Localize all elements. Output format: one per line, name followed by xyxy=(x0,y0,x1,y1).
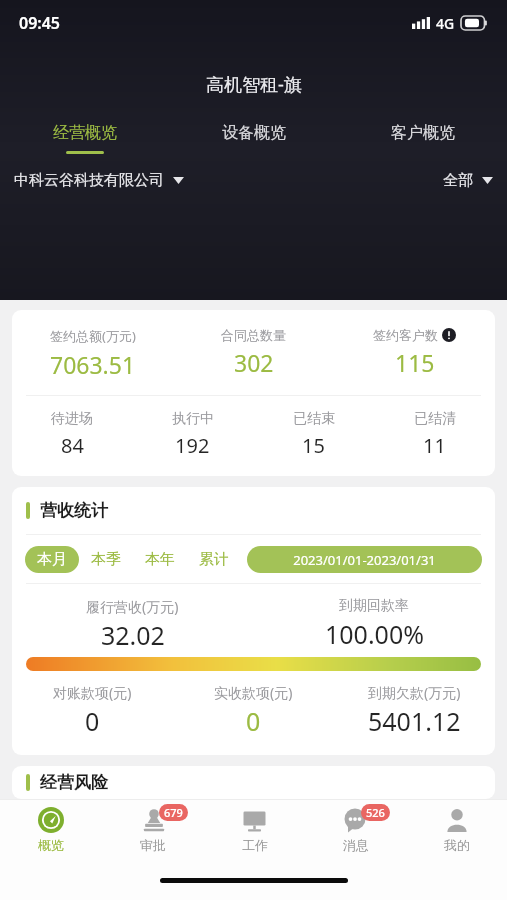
staticText: 84 xyxy=(61,432,84,459)
button[interactable]: 设备概览 xyxy=(169,123,338,154)
staticText: 营收统计 xyxy=(40,500,108,521)
staticText: 15 xyxy=(302,432,325,459)
button[interactable]: 我的 xyxy=(406,800,507,860)
staticText: 已结束 xyxy=(293,410,335,428)
staticText: 100.00% xyxy=(325,617,424,651)
staticText: 对账款项(元) xyxy=(53,683,132,702)
button[interactable]: 经营概览 xyxy=(0,123,169,154)
button[interactable]: 中科云谷科技有限公司 xyxy=(14,171,184,190)
button[interactable]: 本年 xyxy=(133,546,187,573)
button[interactable]: 679 xyxy=(102,800,204,860)
staticText: 0 xyxy=(85,704,100,738)
staticText: 经营概览 xyxy=(53,123,117,143)
staticText: 消息 xyxy=(343,837,369,853)
staticText: 11 xyxy=(423,432,446,459)
staticText: 我的 xyxy=(444,837,470,853)
staticText: 526 xyxy=(366,805,385,820)
button[interactable]: 526 xyxy=(305,800,406,860)
staticText: 115 xyxy=(395,347,435,378)
button[interactable]: 累计 xyxy=(187,546,241,573)
button[interactable]: 概览 xyxy=(0,800,102,860)
button[interactable]: 客户概览 xyxy=(338,123,507,154)
button[interactable]: 全部 xyxy=(443,171,493,190)
staticText: 32.02 xyxy=(101,618,165,652)
staticText: 5401.12 xyxy=(368,704,461,738)
staticText: 192 xyxy=(175,432,210,459)
staticText: 审批 xyxy=(140,837,166,853)
staticText: 09:45 xyxy=(19,12,61,34)
staticText: 设备概览 xyxy=(222,123,286,143)
staticText: 679 xyxy=(164,805,183,820)
staticText: 客户概览 xyxy=(391,123,455,143)
staticText: 本月 xyxy=(37,550,67,569)
staticText: 合同总数量 xyxy=(221,327,286,343)
staticText: 经营风险 xyxy=(40,772,108,793)
staticText: 累计 xyxy=(199,550,229,569)
staticText: 已结清 xyxy=(414,410,456,428)
staticText: 到期回款率 xyxy=(339,597,409,615)
button[interactable]: 2023/01/01-2023/01/31 xyxy=(247,546,482,573)
staticText: 中科云谷科技有限公司 xyxy=(14,171,164,190)
button[interactable]: 工作 xyxy=(204,800,305,860)
staticText: 签约总额(万元) xyxy=(50,327,136,345)
other: Info xyxy=(442,328,456,342)
staticText: 全部 xyxy=(443,171,473,190)
staticText: 302 xyxy=(234,347,274,378)
staticText: 到期欠款(万元) xyxy=(368,683,461,702)
staticText: 概览 xyxy=(38,837,64,853)
staticText: 本年 xyxy=(145,550,175,569)
staticText: 履行营收(万元) xyxy=(86,597,179,616)
staticText: 工作 xyxy=(242,837,268,853)
staticText: 高机智租-旗 xyxy=(206,72,302,97)
staticText: 签约客户数 xyxy=(373,327,438,343)
button[interactable]: 本季 xyxy=(79,546,133,573)
staticText: 4G xyxy=(436,14,455,33)
staticText: 本季 xyxy=(91,550,121,569)
staticText: 2023/01/01-2023/01/31 xyxy=(293,551,436,569)
staticText: 7063.51 xyxy=(50,349,136,380)
staticText: 0 xyxy=(246,704,261,738)
button[interactable]: 本月 xyxy=(25,546,79,573)
staticText: 待进场 xyxy=(51,410,93,428)
staticText: 实收款项(元) xyxy=(214,683,293,702)
staticText: 执行中 xyxy=(172,410,214,428)
